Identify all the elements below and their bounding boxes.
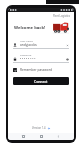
other: User [13,43,17,47]
staticText: Connect [34,79,48,84]
staticText: User name [20,39,33,42]
button[interactable]: Show password [66,58,69,61]
button[interactable]: Clear [66,44,69,47]
staticText: Password [20,53,32,56]
staticText: Welcome back! [14,25,52,31]
other: Truck illustration [52,21,70,34]
button[interactable]: User [13,39,69,49]
button[interactable]: Back [56,134,61,139]
button[interactable]: Home [39,134,44,139]
staticText: • • • • • • • • [20,57,36,61]
button[interactable]: Recent apps [21,134,26,139]
button[interactable]: Password [13,53,69,63]
button[interactable]: Remember password [13,68,69,72]
staticText: Version 1.4 [32,126,46,130]
staticText: Fleet Logistics [53,14,71,18]
staticText: Remember password [20,68,52,72]
staticText: andyjacobs [20,43,37,47]
other: Password [13,57,17,61]
button[interactable]: Connect [13,77,69,85]
